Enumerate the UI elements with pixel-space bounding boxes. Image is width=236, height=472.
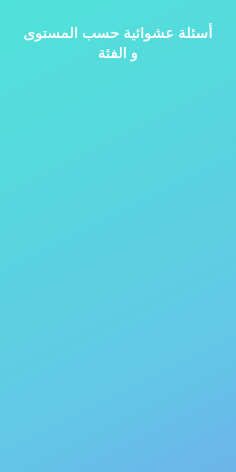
staticText: و الفئة [12,42,224,62]
button[interactable]: App screenshot preview [0,0,236,472]
button[interactable]: أسئلة عشوائية حسب المستوى [12,22,224,62]
staticText: أسئلة عشوائية حسب المستوى [12,22,224,42]
